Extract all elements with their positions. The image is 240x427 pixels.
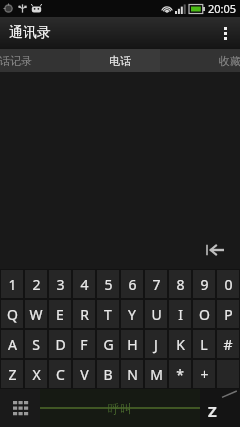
button[interactable]: I (169, 300, 191, 328)
staticText: * (176, 365, 184, 384)
button[interactable]: V (73, 360, 95, 388)
button[interactable]: Y (121, 300, 143, 328)
staticText: T (104, 305, 112, 324)
staticText: B (103, 365, 113, 384)
staticText: 20:05 (208, 1, 237, 16)
staticText: 5 (104, 275, 113, 294)
button[interactable]: 呼叫 (40, 389, 200, 427)
button[interactable]: S (25, 330, 47, 358)
staticText: L (200, 335, 208, 354)
staticText: U (151, 305, 162, 324)
button[interactable]: 3 (49, 270, 71, 298)
button[interactable]: P (217, 300, 239, 328)
staticText: 电话 (109, 54, 131, 68)
button[interactable]: Backspace (198, 237, 232, 263)
staticText: 0 (224, 275, 233, 294)
staticText: Z (208, 401, 217, 421)
staticText: S (32, 335, 40, 354)
button[interactable]: 电话 (80, 49, 160, 72)
staticText: W (29, 305, 43, 324)
button[interactable]: 通话记录 (0, 49, 80, 72)
button[interactable]: G (97, 330, 119, 358)
staticText: 收藏夹 (219, 54, 240, 68)
staticText: Q (7, 305, 18, 324)
staticText: O (199, 305, 210, 324)
staticText: 1 (8, 275, 17, 294)
button[interactable]: 6 (121, 270, 143, 298)
button[interactable]: 8 (169, 270, 191, 298)
button[interactable]: 0 (217, 270, 239, 298)
button[interactable]: U (145, 300, 167, 328)
staticText: 呼叫 (108, 401, 132, 416)
button[interactable]: 9 (193, 270, 215, 298)
button[interactable]: L (193, 330, 215, 358)
staticText: 7 (152, 275, 161, 294)
staticText: E (56, 305, 64, 324)
staticText: 4 (80, 275, 89, 294)
button[interactable]: 4 (73, 270, 95, 298)
button[interactable]: K (169, 330, 191, 358)
staticText: M (150, 365, 163, 384)
button[interactable]: N (121, 360, 143, 388)
staticText: P (224, 305, 233, 324)
staticText: N (127, 365, 138, 384)
staticText: X (32, 365, 41, 384)
button[interactable]: Dialpad (0, 389, 40, 427)
staticText: 9 (200, 275, 209, 294)
button[interactable]: X (25, 360, 47, 388)
button[interactable]: Q (1, 300, 23, 328)
staticText: 通话记录 (0, 54, 32, 68)
staticText: K (176, 335, 185, 354)
button[interactable]: F (73, 330, 95, 358)
button[interactable]: + (193, 360, 215, 388)
button[interactable]: More options (210, 17, 240, 49)
button[interactable]: M (145, 360, 167, 388)
staticText: J (154, 335, 158, 354)
button[interactable]: 7 (145, 270, 167, 298)
staticText: V (80, 365, 89, 384)
button[interactable]: # (217, 330, 239, 358)
button[interactable]: 2 (25, 270, 47, 298)
staticText: Y (128, 305, 136, 324)
button[interactable]: * (169, 360, 191, 388)
staticText: H (127, 335, 138, 354)
staticText: C (56, 365, 65, 384)
button[interactable]: J (145, 330, 167, 358)
staticText: I (178, 305, 183, 324)
staticText: Z (8, 365, 17, 384)
button[interactable]: 1 (1, 270, 23, 298)
staticText: F (80, 335, 88, 354)
staticText: R (80, 305, 89, 324)
staticText: + (200, 365, 209, 384)
button[interactable]: W (25, 300, 47, 328)
button[interactable]: B (97, 360, 119, 388)
staticText: 6 (128, 275, 137, 294)
button[interactable]: R (73, 300, 95, 328)
staticText: 8 (176, 275, 185, 294)
button[interactable]: 收藏夹 (160, 49, 240, 72)
button[interactable]: A (1, 330, 23, 358)
button[interactable]: O (193, 300, 215, 328)
button[interactable]: H (121, 330, 143, 358)
staticText: 2 (32, 275, 41, 294)
button[interactable]: E (49, 300, 71, 328)
staticText: # (223, 335, 233, 354)
button[interactable]: Z (1, 360, 23, 388)
button[interactable]: 5 (97, 270, 119, 298)
staticText: A (8, 335, 17, 354)
button[interactable]: C (49, 360, 71, 388)
button[interactable]: D (49, 330, 71, 358)
staticText: D (55, 335, 66, 354)
staticText: 3 (56, 275, 65, 294)
staticText: 通讯录 (9, 24, 51, 42)
button[interactable]: T (97, 300, 119, 328)
staticText: G (103, 335, 114, 354)
